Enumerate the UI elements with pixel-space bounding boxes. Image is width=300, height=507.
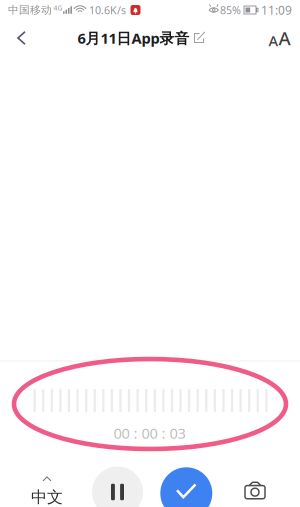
staticText: 4G: [53, 4, 62, 12]
button[interactable]: Back: [0, 21, 43, 55]
staticText: 85%: [220, 3, 241, 17]
staticText: A: [268, 31, 278, 50]
staticText: 10.6K/s: [89, 3, 126, 17]
staticText: 6月11日App录音: [77, 28, 189, 48]
staticText: A: [278, 26, 290, 50]
button[interactable]: Rename: [191, 28, 206, 48]
staticText: 中国移动: [8, 3, 52, 16]
button[interactable]: 中文: [16, 470, 78, 507]
button[interactable]: Text size: [259, 21, 300, 55]
staticText: 中文: [31, 487, 63, 507]
button[interactable]: Done: [160, 467, 212, 507]
button[interactable]: Camera: [233, 468, 277, 507]
staticText: 00 : 00 : 03: [113, 423, 185, 443]
button[interactable]: Pause: [92, 466, 143, 507]
staticText: 11:09: [261, 2, 292, 18]
